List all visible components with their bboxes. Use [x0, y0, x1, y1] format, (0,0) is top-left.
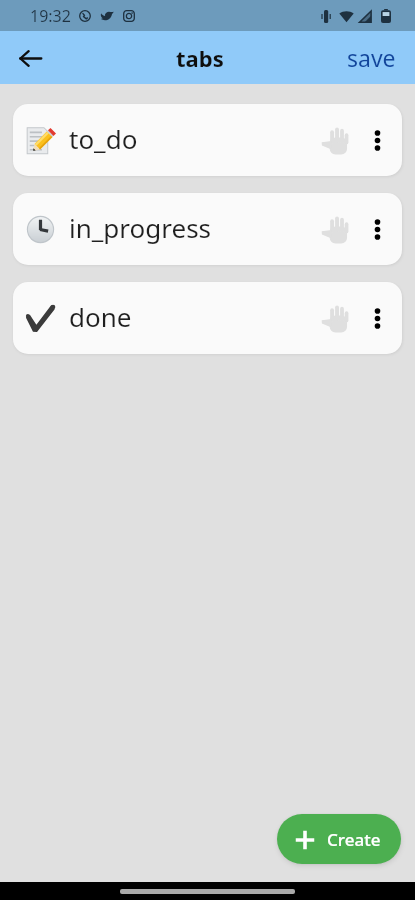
button[interactable]: Reorder [316, 298, 356, 338]
staticText: done [69, 299, 132, 334]
button[interactable]: save [341, 34, 402, 81]
button[interactable]: Reorder [316, 209, 356, 249]
button[interactable]: More options [358, 121, 396, 159]
staticText: Create [327, 828, 381, 851]
staticText: to_do [69, 121, 138, 156]
button[interactable]: Create [277, 814, 401, 864]
button[interactable]: More options [358, 299, 396, 337]
staticText: tabs [176, 43, 224, 73]
staticText: 19:32 [30, 5, 71, 27]
button[interactable]: Reorder [316, 120, 356, 160]
staticText: in_progress [69, 210, 212, 245]
staticText: save [347, 42, 396, 73]
button[interactable]: done [13, 282, 402, 354]
button[interactable]: in_progress [13, 193, 402, 265]
button[interactable]: Back [8, 36, 52, 80]
button[interactable]: More options [358, 210, 396, 248]
button[interactable]: to_do [13, 104, 402, 176]
